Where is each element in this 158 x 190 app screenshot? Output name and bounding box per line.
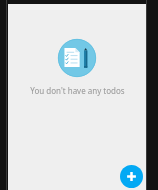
staticText: You don't have any todos [30,85,125,96]
button[interactable]: Add todo [120,165,143,188]
